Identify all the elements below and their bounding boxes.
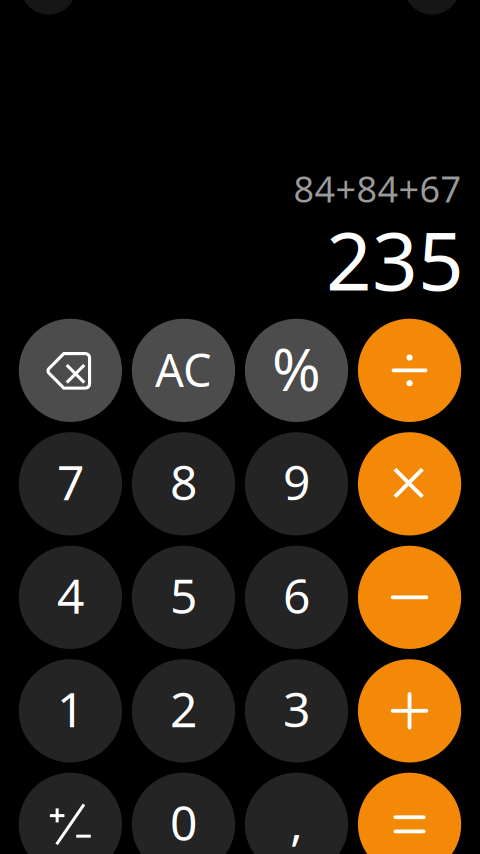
button[interactable]: AC bbox=[132, 319, 235, 422]
button[interactable]: 7 bbox=[19, 432, 122, 535]
button[interactable]: 9 bbox=[245, 432, 348, 535]
staticText: 3 bbox=[283, 677, 310, 740]
staticText: 6 bbox=[283, 563, 310, 627]
button[interactable]: Delete bbox=[19, 319, 122, 422]
button[interactable]: Divide bbox=[358, 319, 461, 422]
button[interactable]: Plus minus bbox=[19, 773, 122, 854]
staticText: 2 bbox=[170, 677, 197, 740]
button[interactable]: Minus bbox=[358, 546, 461, 649]
button[interactable]: Equals bbox=[358, 773, 461, 854]
staticText: 1 bbox=[57, 677, 84, 740]
button[interactable]: 8 bbox=[132, 432, 235, 535]
staticText: 4 bbox=[57, 563, 84, 627]
staticText: , bbox=[290, 790, 303, 854]
button[interactable]: Multiply bbox=[358, 432, 461, 535]
button[interactable]: , bbox=[245, 773, 348, 854]
staticText: 7 bbox=[57, 450, 84, 513]
staticText: 84+84+67 bbox=[293, 165, 461, 212]
staticText: AC bbox=[155, 339, 212, 399]
button[interactable]: 3 bbox=[245, 659, 348, 762]
staticText: 5 bbox=[170, 563, 197, 627]
button[interactable]: Plus bbox=[358, 659, 461, 762]
button[interactable]: 5 bbox=[132, 546, 235, 649]
button[interactable]: % bbox=[245, 319, 348, 422]
staticText: 9 bbox=[283, 450, 310, 513]
staticText: 8 bbox=[170, 450, 197, 513]
button[interactable]: 2 bbox=[132, 659, 235, 762]
button[interactable]: 4 bbox=[19, 546, 122, 649]
button[interactable]: 0 bbox=[132, 773, 235, 854]
button[interactable]: 1 bbox=[19, 659, 122, 762]
staticText: 0 bbox=[170, 790, 197, 854]
staticText: 235 bbox=[326, 206, 464, 313]
staticText: % bbox=[272, 329, 321, 407]
button[interactable]: 6 bbox=[245, 546, 348, 649]
